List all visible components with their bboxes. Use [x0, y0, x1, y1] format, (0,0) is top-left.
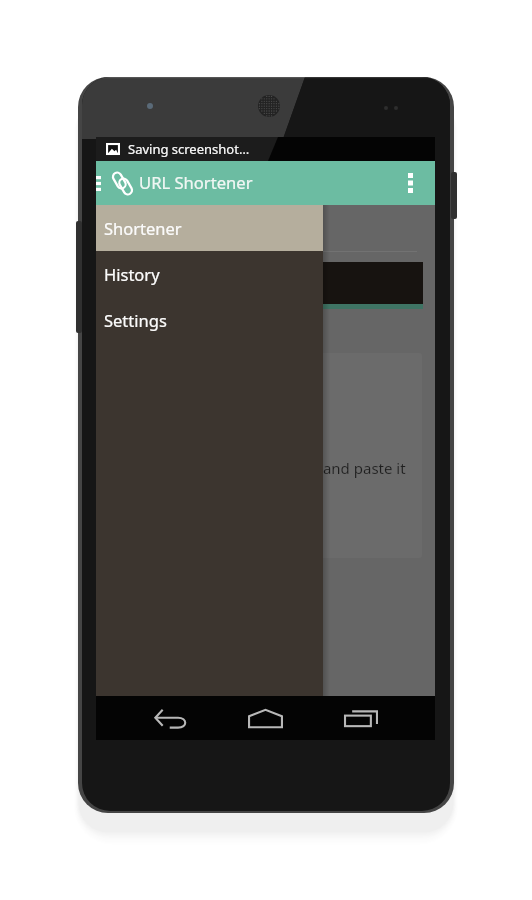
button[interactable]: History [96, 251, 323, 297]
button[interactable]: Home [218, 696, 313, 740]
button[interactable]: Open navigation drawer [96, 161, 109, 205]
button[interactable]: Recent apps [313, 696, 409, 740]
staticText: Copy a URL from anywhere and paste it [112, 458, 422, 478]
staticText: URL Shortener [139, 171, 253, 194]
staticText: Saving screenshot… [128, 140, 250, 158]
staticText: Shortener [104, 217, 182, 239]
button[interactable]: Shortener [96, 205, 323, 251]
button[interactable]: Settings [96, 297, 323, 343]
button[interactable]: Back [123, 696, 218, 740]
staticText: History [104, 263, 160, 285]
button[interactable]: More options [385, 161, 435, 205]
staticText: Settings [104, 309, 167, 331]
